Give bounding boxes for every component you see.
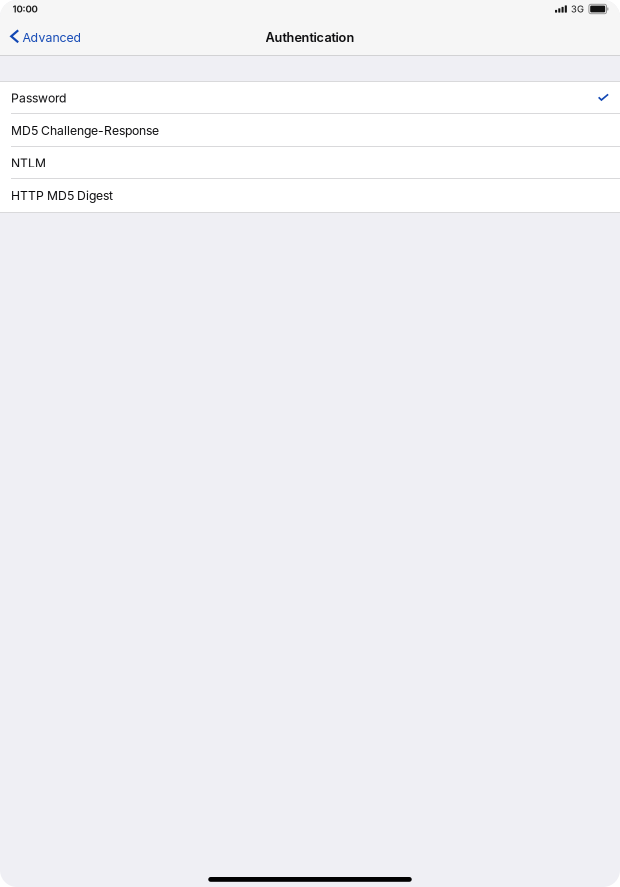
staticText: MD5 Challenge-Response bbox=[11, 123, 159, 138]
staticText: Advanced bbox=[22, 30, 81, 45]
staticText: HTTP MD5 Digest bbox=[11, 188, 113, 203]
button[interactable]: HTTP MD5 Digest bbox=[0, 179, 620, 212]
button[interactable]: MD5 Challenge-Response bbox=[0, 114, 620, 147]
button[interactable]: NTLM bbox=[0, 147, 620, 179]
staticText: 3G bbox=[571, 3, 584, 15]
staticText: Authentication bbox=[265, 30, 354, 45]
staticText: Password bbox=[11, 91, 66, 105]
button[interactable]: Password bbox=[0, 82, 620, 114]
staticText: NTLM bbox=[11, 156, 46, 170]
button[interactable]: Advanced bbox=[0, 21, 91, 52]
staticText: 10:00 bbox=[12, 3, 37, 15]
